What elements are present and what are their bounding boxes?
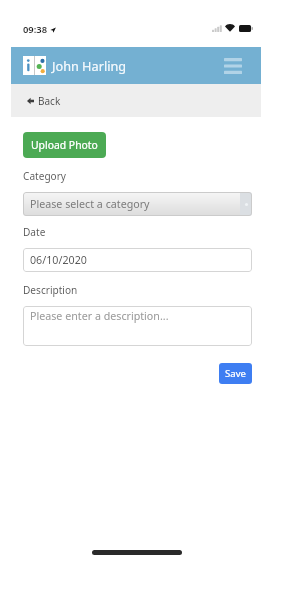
button[interactable]: Please enter a description... [23, 306, 252, 346]
staticText: Category [23, 169, 67, 183]
staticText: Back [38, 94, 61, 108]
button[interactable]: 06/10/2020 [23, 248, 252, 272]
staticText: 09:38 [23, 23, 48, 36]
button[interactable]: Please select a category [23, 192, 252, 216]
button[interactable]: Back [11, 84, 261, 117]
button[interactable]: Upload Photo [23, 132, 106, 158]
staticText: Please select a category [30, 197, 150, 212]
staticText: Please enter a description... [30, 309, 169, 324]
staticText: Date [23, 225, 46, 239]
button[interactable]: Save [219, 363, 252, 384]
staticText: Description [23, 283, 78, 297]
button[interactable]: Menu [224, 47, 242, 84]
staticText: Save [225, 367, 246, 380]
staticText: 06/10/2020 [30, 253, 87, 268]
staticText: Upload Photo [31, 138, 98, 152]
staticText: John Harling [52, 57, 127, 74]
